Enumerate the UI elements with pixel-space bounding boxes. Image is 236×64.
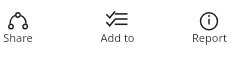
staticText: Share (3, 30, 33, 45)
button[interactable]: Share (0, 8, 56, 49)
button[interactable]: Add to (79, 8, 155, 49)
staticText: Report (192, 30, 227, 45)
button[interactable]: Report (171, 8, 236, 49)
staticText: Add to (100, 30, 135, 45)
